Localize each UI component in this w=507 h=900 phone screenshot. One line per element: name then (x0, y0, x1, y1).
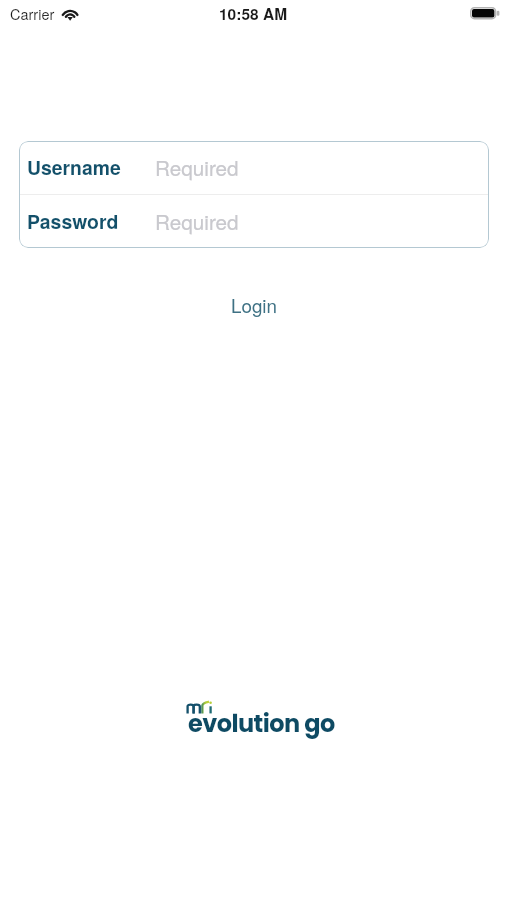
staticText: 10:58 AM (219, 3, 288, 25)
staticText: Required (155, 206, 239, 236)
other: Wi-Fi signal (61, 5, 80, 19)
staticText: Carrier (10, 3, 55, 24)
staticText: Login (231, 291, 277, 318)
staticText: Required (155, 152, 239, 182)
button[interactable]: Login (207, 284, 301, 325)
button[interactable]: Username (19, 141, 489, 194)
staticText: Username (27, 153, 121, 181)
button[interactable]: Password (19, 195, 489, 248)
other: Battery full (470, 7, 499, 21)
staticText: evolution go (188, 707, 335, 741)
staticText: Password (27, 207, 119, 235)
